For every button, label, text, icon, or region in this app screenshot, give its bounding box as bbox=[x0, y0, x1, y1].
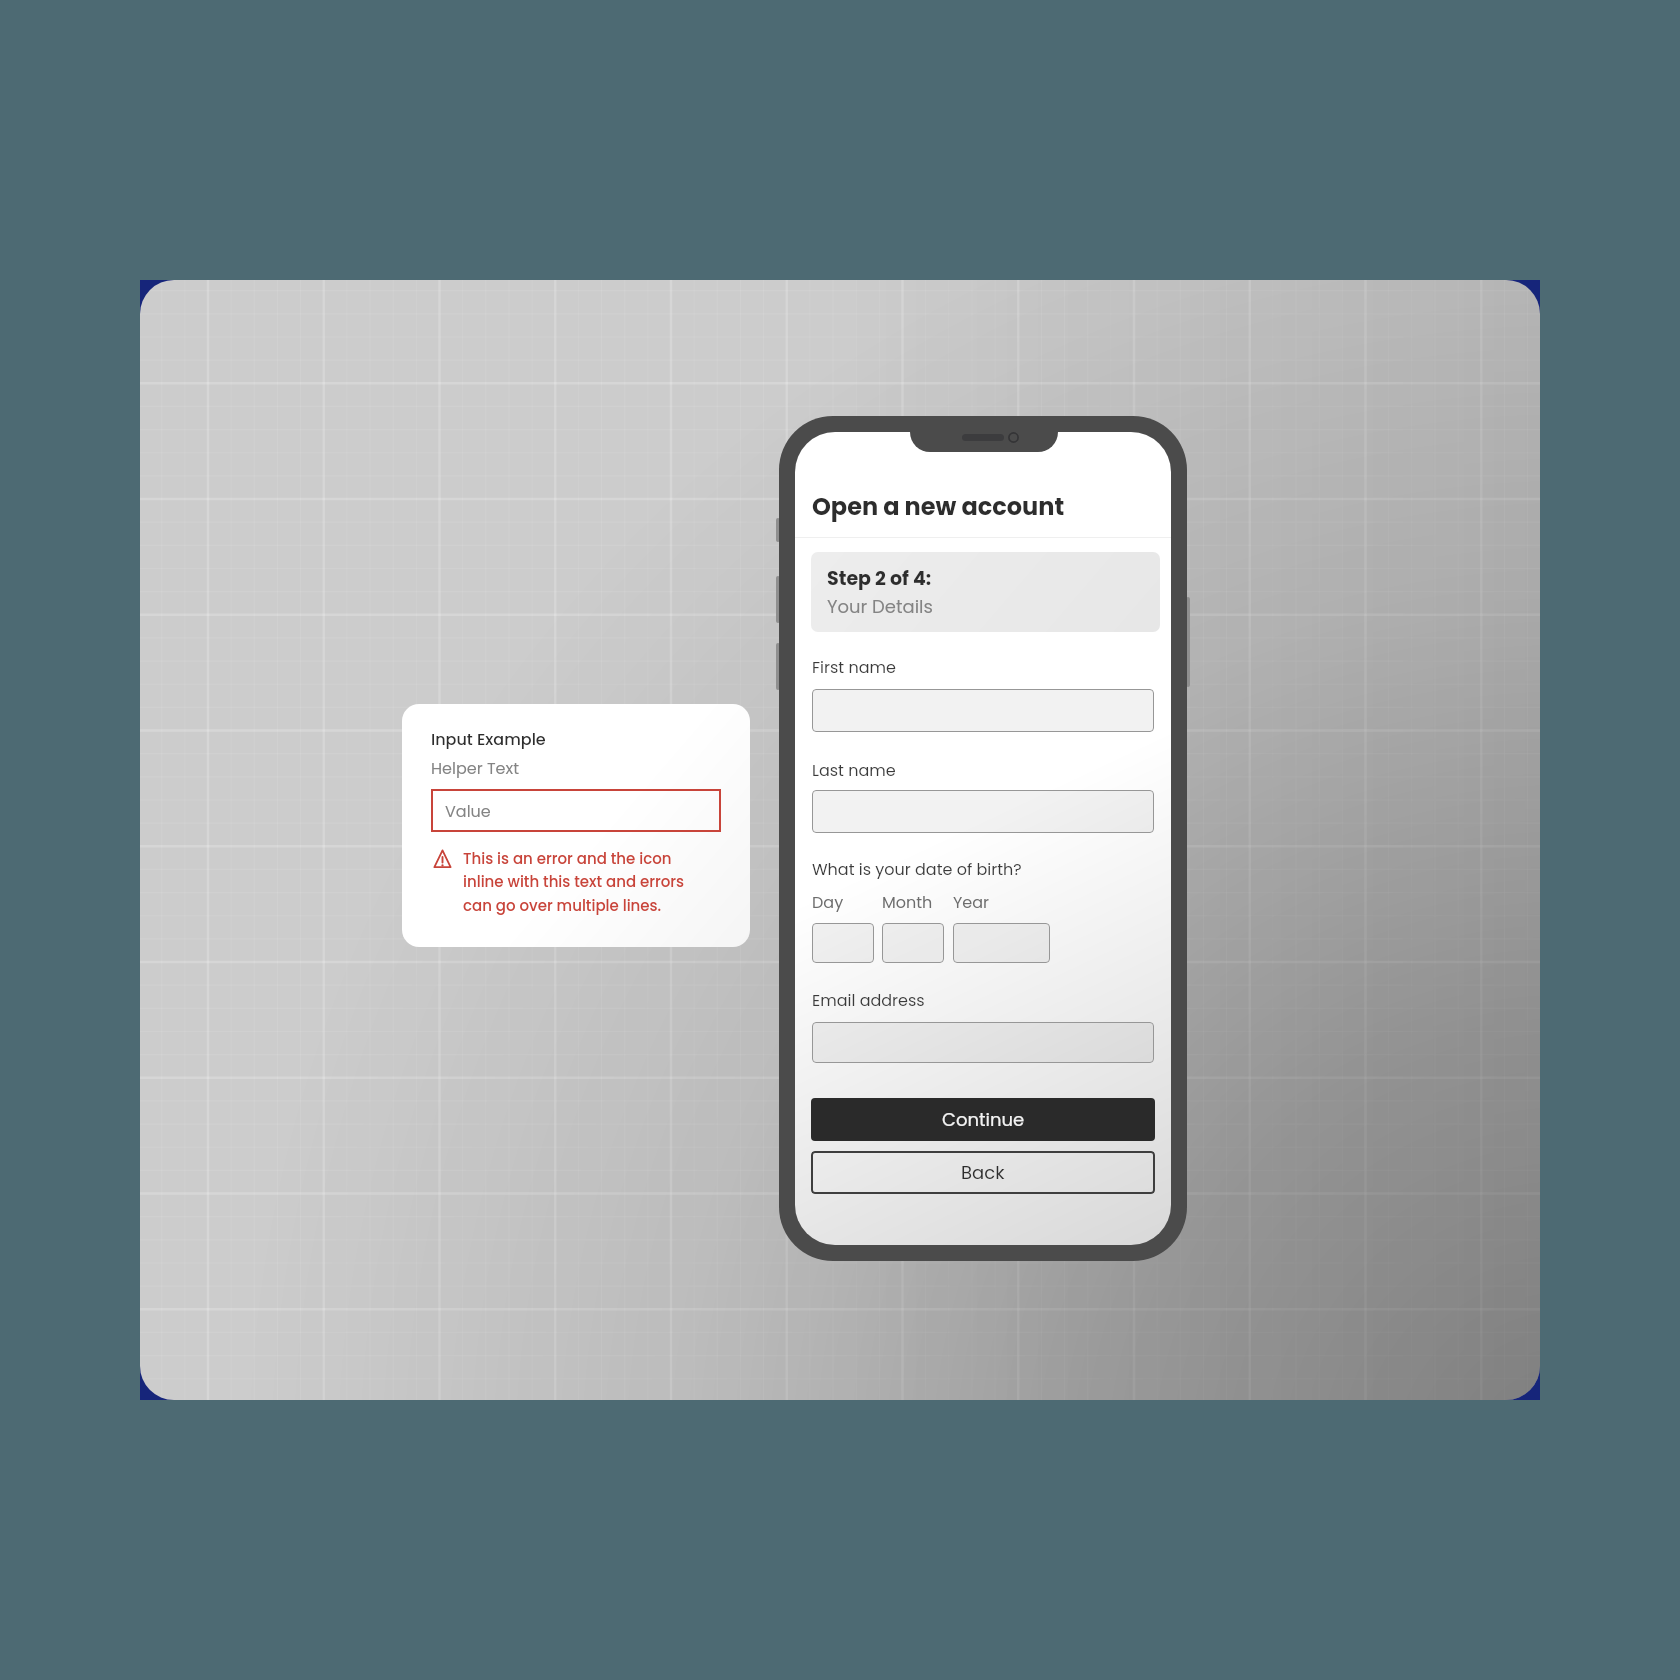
staticText: Value bbox=[445, 800, 491, 822]
staticText: This is an error and the icon inline wit… bbox=[463, 848, 691, 916]
button[interactable]: Step 2 of 4: bbox=[811, 552, 1160, 632]
staticText: Back bbox=[961, 1160, 1005, 1185]
staticText: First name bbox=[812, 656, 896, 678]
button[interactable]: Continue bbox=[811, 1098, 1155, 1141]
button[interactable]: Volume up bbox=[776, 576, 780, 623]
button[interactable]: First name input bbox=[812, 689, 1154, 732]
staticText: Open a new account bbox=[812, 490, 1065, 524]
button[interactable]: Back bbox=[811, 1151, 1155, 1194]
button[interactable]: Last name input bbox=[812, 790, 1154, 833]
staticText: Helper Text bbox=[431, 757, 519, 779]
button[interactable]: Value input with error bbox=[431, 789, 721, 832]
staticText: Year bbox=[953, 891, 990, 913]
staticText: Your Details bbox=[827, 594, 933, 619]
button[interactable]: Power bbox=[1186, 597, 1190, 687]
staticText: What is your date of birth? bbox=[812, 858, 1022, 880]
button[interactable]: Volume down bbox=[776, 643, 780, 690]
button[interactable]: Day input bbox=[812, 923, 874, 963]
staticText: Step 2 of 4: bbox=[827, 565, 932, 592]
staticText: Continue bbox=[942, 1107, 1025, 1132]
staticText: Last name bbox=[812, 759, 896, 781]
button[interactable]: Silent switch bbox=[776, 518, 780, 542]
staticText: Month bbox=[882, 891, 933, 913]
staticText: Day bbox=[812, 891, 844, 913]
button[interactable]: Year input bbox=[953, 923, 1050, 963]
staticText: Email address bbox=[812, 989, 925, 1011]
button[interactable]: Month input bbox=[882, 923, 944, 963]
button[interactable]: Email address input bbox=[812, 1022, 1154, 1063]
staticText: Input Example bbox=[431, 728, 546, 750]
